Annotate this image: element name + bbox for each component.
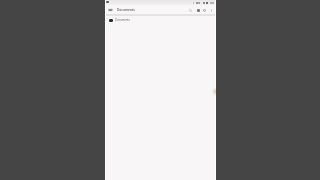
button[interactable]: Search: [187, 7, 193, 13]
staticText: Documents: [117, 8, 135, 12]
button[interactable]: More options: [208, 7, 214, 13]
button[interactable]: Toggle grid view: [195, 7, 201, 13]
staticText: Documents: [115, 18, 130, 22]
button[interactable]: Documents: [105, 16, 216, 24]
button[interactable]: Open navigation menu: [107, 6, 114, 13]
button[interactable]: Sort: [201, 7, 207, 13]
